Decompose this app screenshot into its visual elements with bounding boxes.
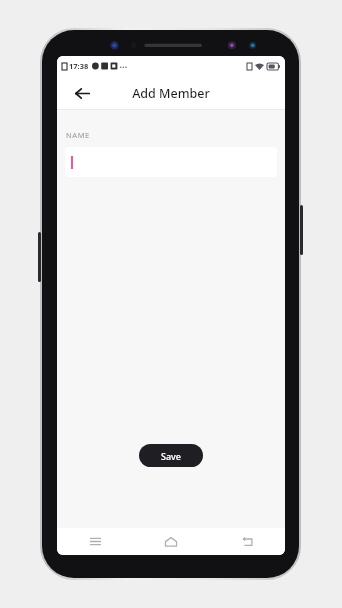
button[interactable]: Back xyxy=(69,80,95,106)
staticText: NAME xyxy=(66,130,90,140)
button[interactable]: Recent apps xyxy=(57,528,133,555)
staticText: Add Member xyxy=(132,85,210,102)
button[interactable]: Save xyxy=(139,444,203,467)
button[interactable] xyxy=(65,147,277,177)
staticText: Save xyxy=(161,450,182,462)
button[interactable]: Home xyxy=(133,528,209,555)
button[interactable]: Back xyxy=(209,528,285,555)
staticText: 17:38 xyxy=(69,61,89,71)
